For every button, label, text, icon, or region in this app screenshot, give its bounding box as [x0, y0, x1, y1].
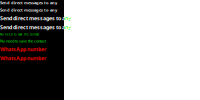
staticText: Send direct messages to any — [0, 7, 57, 13]
staticText: No need to save the contact — [0, 38, 46, 44]
staticText: WhatsApp number — [0, 46, 46, 53]
staticText: Send direct messages to any — [0, 0, 57, 5]
staticText: WhatsApp number — [0, 55, 46, 62]
staticText: Send direct messages to any — [0, 24, 71, 31]
staticText: Send direct messages to any — [0, 15, 71, 22]
staticText: No need to save the contact — [0, 33, 39, 36]
